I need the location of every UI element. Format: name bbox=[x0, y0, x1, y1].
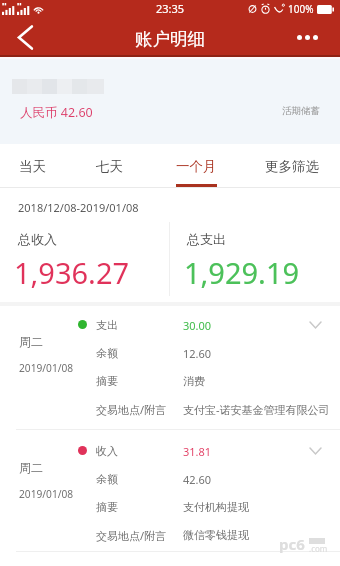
staticText: 人民币 42.60 bbox=[20, 104, 93, 121]
staticText: 2019/01/08 bbox=[19, 361, 74, 375]
staticText: 账户明细 bbox=[135, 28, 205, 50]
staticText: 摘要 bbox=[96, 374, 118, 388]
button[interactable]: 更多 bbox=[285, 19, 329, 56]
button[interactable]: 更多筛选 bbox=[258, 144, 326, 188]
staticText: 42.60 bbox=[183, 472, 212, 487]
staticText: 交易地点/附言 bbox=[96, 402, 167, 417]
staticText: 支付宝-诺安基金管理有限公司 bbox=[183, 402, 330, 417]
staticText: 100% bbox=[288, 2, 314, 16]
button[interactable]: 周二 bbox=[0, 430, 340, 555]
staticText: 一个月 bbox=[176, 158, 217, 175]
staticText: 消费 bbox=[183, 374, 205, 388]
staticText: 2018/12/08-2019/01/08 bbox=[18, 200, 139, 215]
staticText: 微信零钱提现 bbox=[183, 528, 249, 542]
staticText: 周二 bbox=[19, 334, 43, 349]
button[interactable]: 当天 bbox=[12, 144, 53, 188]
staticText: 收入 bbox=[96, 444, 118, 458]
button[interactable]: 展开 bbox=[303, 439, 327, 463]
button[interactable]: 展开 bbox=[303, 313, 327, 337]
staticText: 1,929.19 bbox=[184, 253, 300, 292]
staticText: 总支出 bbox=[187, 231, 226, 247]
staticText: 更多筛选 bbox=[265, 158, 319, 175]
staticText: 余额 bbox=[96, 472, 118, 486]
staticText: 12.60 bbox=[183, 346, 212, 361]
staticText: 31.81 bbox=[183, 444, 212, 459]
staticText: 当天 bbox=[19, 158, 46, 175]
staticText: .com bbox=[309, 543, 328, 554]
staticText: 总收入 bbox=[18, 231, 57, 247]
staticText: 摘要 bbox=[96, 500, 118, 514]
staticText: 1,936.27 bbox=[14, 253, 130, 292]
staticText: 周二 bbox=[19, 460, 43, 475]
button[interactable]: 返回 bbox=[3, 19, 47, 56]
staticText: 七天 bbox=[96, 158, 123, 175]
staticText: 支出 bbox=[96, 318, 118, 332]
staticText: 支付机构提现 bbox=[183, 500, 249, 514]
button[interactable]: 七天 bbox=[89, 144, 130, 188]
staticText: 余额 bbox=[96, 346, 118, 360]
button[interactable]: 周二 bbox=[0, 304, 340, 429]
staticText: 30.00 bbox=[183, 318, 212, 333]
button[interactable]: 一个月 bbox=[176, 144, 217, 188]
staticText: 交易地点/附言 bbox=[96, 528, 167, 543]
staticText: 23:35 bbox=[156, 1, 185, 16]
staticText: pc6 bbox=[279, 534, 305, 554]
staticText: 2019/01/08 bbox=[19, 487, 74, 501]
staticText: 活期储蓄 bbox=[282, 105, 320, 117]
